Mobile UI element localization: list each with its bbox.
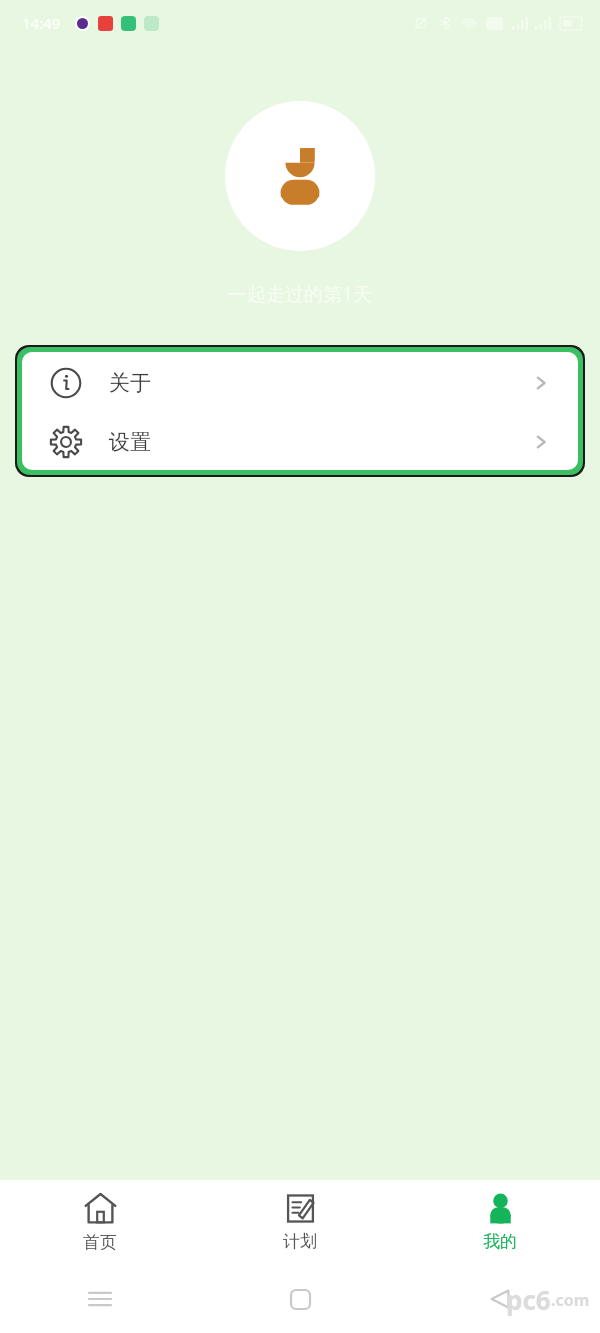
staticText: 14:49 xyxy=(22,13,61,33)
staticText: 关于 xyxy=(109,370,151,396)
staticText: 设置 xyxy=(109,429,151,455)
staticText: pc6 xyxy=(506,1282,551,1317)
staticText: 首页 xyxy=(83,1232,117,1253)
staticText: 计划 xyxy=(283,1231,317,1252)
button[interactable]: 首页 xyxy=(0,1180,200,1265)
staticText: 一起走过的第1天 xyxy=(0,281,600,307)
staticText: .com xyxy=(551,1289,590,1311)
button[interactable]: Recents xyxy=(78,1277,122,1321)
button[interactable]: Home xyxy=(278,1277,322,1321)
button[interactable]: 设置 xyxy=(22,413,578,470)
button[interactable]: 关于 xyxy=(22,352,578,413)
button[interactable]: 我的 xyxy=(400,1180,600,1265)
staticText: 我的 xyxy=(483,1231,517,1252)
button[interactable]: 计划 xyxy=(200,1180,400,1265)
button[interactable]: Profile avatar xyxy=(225,101,375,251)
button[interactable]: Back xyxy=(478,1277,522,1321)
